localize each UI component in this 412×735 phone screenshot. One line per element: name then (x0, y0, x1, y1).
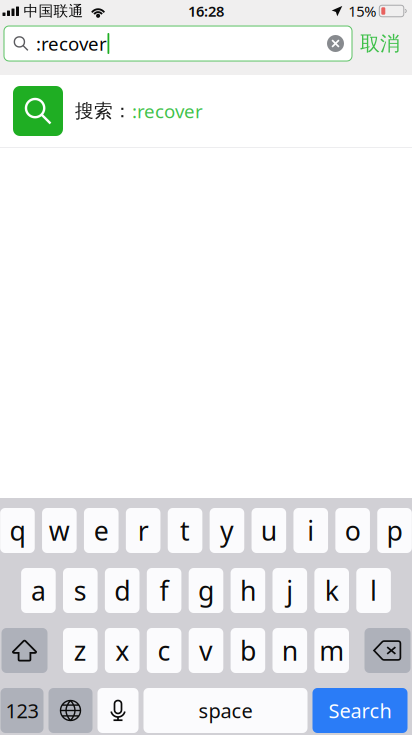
staticText: Search (328, 697, 391, 724)
button[interactable]: z (63, 628, 98, 673)
button[interactable]: y (210, 508, 244, 553)
button[interactable]: u (251, 508, 286, 553)
staticText: 15% (348, 1, 376, 21)
staticText: z (74, 633, 87, 668)
button[interactable]: Clear text (319, 25, 352, 61)
staticText: r (138, 513, 149, 548)
staticText: l (370, 573, 377, 608)
staticText: :recover (36, 31, 107, 56)
button[interactable]: Dictate (97, 688, 138, 733)
button[interactable]: n (272, 628, 307, 673)
staticText: o (345, 513, 361, 548)
staticText: 搜索： (75, 99, 132, 122)
button[interactable]: x (105, 628, 139, 673)
staticText: u (261, 513, 277, 548)
button[interactable]: i (293, 508, 328, 553)
button[interactable]: c (147, 628, 181, 673)
button[interactable]: p (377, 508, 412, 553)
button[interactable]: 取消 (352, 26, 408, 61)
button[interactable]: f (147, 568, 181, 613)
button[interactable]: w (42, 508, 77, 553)
button[interactable]: v (189, 628, 223, 673)
staticText: e (94, 513, 109, 548)
staticText: :recover (132, 99, 203, 123)
staticText: y (220, 513, 234, 548)
button[interactable]: h (231, 568, 265, 613)
staticText: f (160, 573, 169, 608)
button[interactable]: Next keyboard (48, 688, 92, 733)
staticText: h (240, 573, 256, 608)
staticText: g (198, 573, 214, 608)
button[interactable]: Shift (1, 628, 47, 673)
button[interactable]: k (314, 568, 349, 613)
staticText: v (199, 633, 213, 668)
button[interactable]: d (105, 568, 139, 613)
button[interactable]: t (168, 508, 202, 553)
staticText: j (286, 573, 293, 608)
staticText: k (325, 573, 339, 608)
staticText: w (49, 513, 70, 548)
button[interactable]: Delete (364, 628, 410, 673)
button[interactable]: Search (312, 688, 407, 733)
staticText: s (74, 573, 87, 608)
button[interactable]: space (143, 688, 307, 733)
staticText: m (319, 633, 344, 668)
staticText: c (158, 633, 171, 668)
button[interactable]: q (0, 508, 35, 553)
button[interactable]: e (84, 508, 118, 553)
button[interactable]: o (335, 508, 370, 553)
button[interactable]: r (126, 508, 160, 553)
staticText: x (115, 633, 129, 668)
staticText: p (386, 513, 402, 548)
staticText: 中国联通 (23, 2, 83, 20)
button[interactable]: j (272, 568, 307, 613)
staticText: b (240, 633, 256, 668)
button[interactable]: b (231, 628, 265, 673)
staticText: 123 (5, 697, 38, 724)
button[interactable]: m (314, 628, 349, 673)
button[interactable]: g (189, 568, 223, 613)
staticText: n (282, 633, 298, 668)
staticText: t (180, 513, 190, 548)
button[interactable]: l (356, 568, 391, 613)
button[interactable]: s (63, 568, 98, 613)
staticText: q (9, 513, 25, 548)
button[interactable]: a (21, 568, 56, 613)
staticText: 取消 (360, 31, 400, 56)
staticText: 16:28 (188, 1, 224, 21)
staticText: space (198, 697, 252, 724)
staticText: i (307, 513, 314, 548)
staticText: a (31, 573, 46, 608)
staticText: d (114, 573, 130, 608)
button[interactable]: 123 (0, 688, 43, 733)
button[interactable]: 搜索： (0, 75, 412, 147)
